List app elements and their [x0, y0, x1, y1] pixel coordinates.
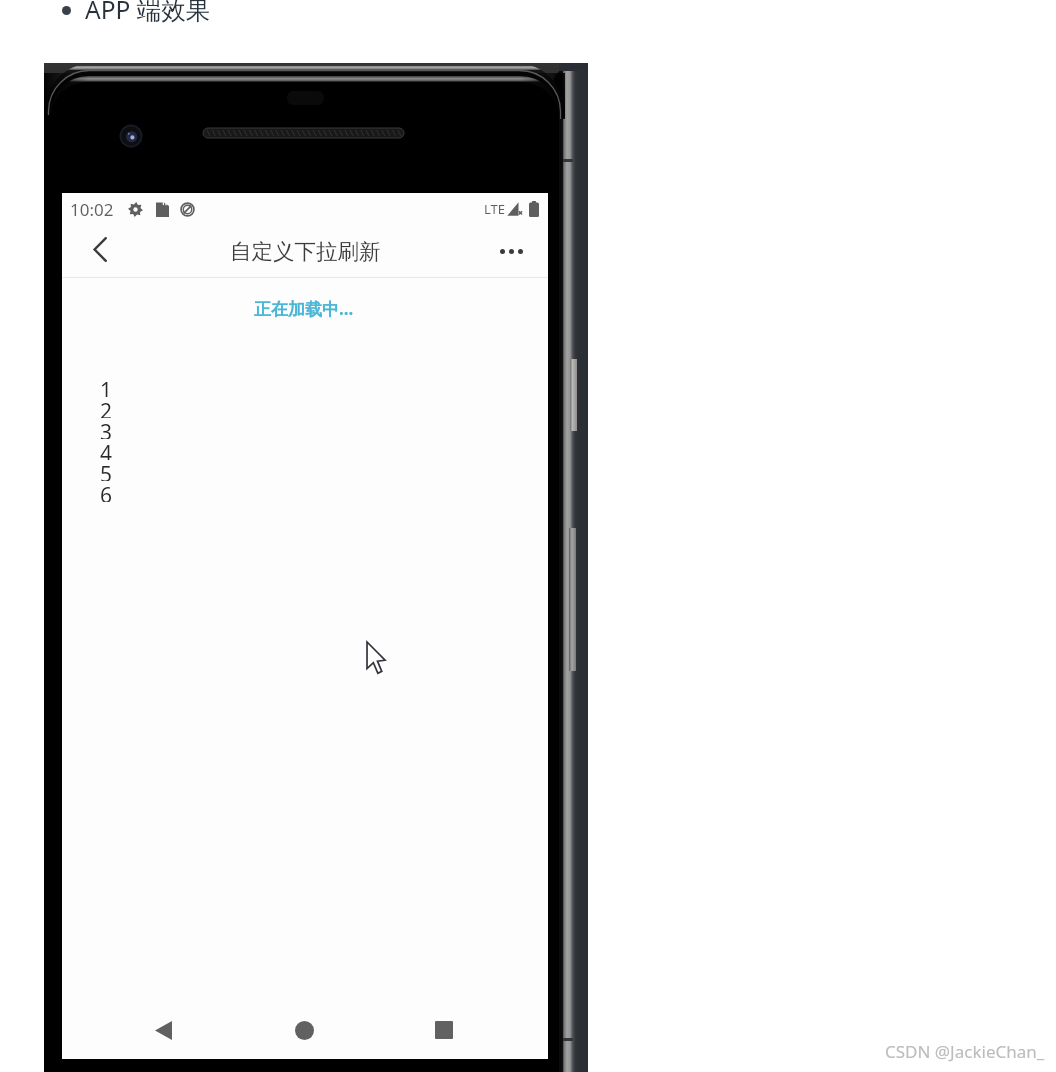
- staticText: CSDN @JackieChan_: [885, 1040, 1045, 1063]
- staticText: 3: [100, 418, 113, 439]
- staticText: 10:02: [70, 198, 114, 221]
- button[interactable]: More options: [487, 227, 535, 275]
- button[interactable]: 4: [100, 439, 508, 460]
- staticText: LTE: [484, 200, 506, 218]
- button[interactable]: 5: [100, 460, 508, 481]
- button[interactable]: 6: [100, 481, 508, 502]
- staticText: 4: [100, 439, 113, 460]
- button[interactable]: Recent apps: [420, 1006, 468, 1054]
- staticText: 5: [100, 460, 113, 481]
- staticText: APP 端效果: [85, 0, 211, 26]
- button[interactable]: 1: [100, 376, 508, 397]
- staticText: 正在加载中...: [254, 297, 354, 320]
- button[interactable]: Home: [280, 1006, 328, 1054]
- button[interactable]: 3: [100, 418, 508, 439]
- button[interactable]: 2: [100, 397, 508, 418]
- staticText: 1: [100, 376, 113, 397]
- staticText: 2: [100, 397, 113, 418]
- button[interactable]: Back: [139, 1006, 187, 1054]
- button[interactable]: Back: [76, 225, 124, 273]
- staticText: 自定义下拉刷新: [230, 238, 381, 265]
- staticText: 6: [100, 481, 113, 502]
